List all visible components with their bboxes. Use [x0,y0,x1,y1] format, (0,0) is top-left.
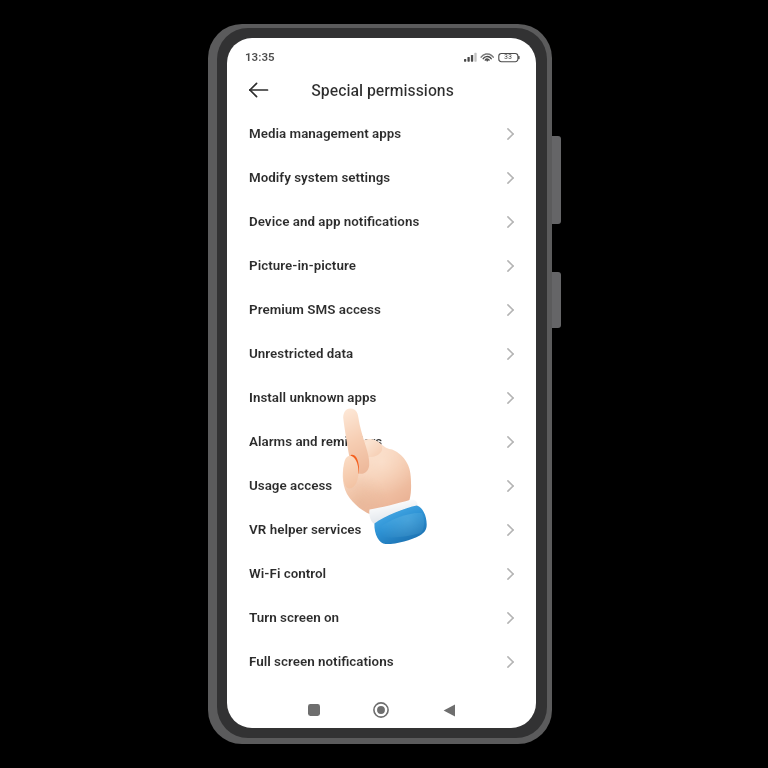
staticText: 13:35 [245,50,275,63]
button[interactable]: Recents [292,688,336,728]
button[interactable]: Modify system settings [227,156,536,200]
staticText: Device and app notifications [249,214,507,230]
button[interactable]: Device and app notifications [227,200,536,244]
staticText: Alarms and reminders [249,434,507,450]
button[interactable]: Back [427,688,471,728]
button[interactable]: Media management apps [227,112,536,156]
staticText: Wi-Fi control [249,566,507,582]
button[interactable]: Unrestricted data [227,332,536,376]
staticText: Turn screen on [249,610,507,626]
staticText: Full screen notifications [249,654,507,670]
staticText: Media management apps [249,126,507,142]
staticText: 33 [504,53,512,61]
staticText: VR helper services [249,522,507,538]
button[interactable]: Install unknown apps [227,376,536,420]
staticText: Usage access [249,478,507,494]
staticText: Picture-in-picture [249,258,507,274]
button[interactable]: Wi-Fi control [227,552,536,596]
button[interactable]: Picture-in-picture [227,244,536,288]
button[interactable]: VR helper services [227,508,536,552]
staticText: Premium SMS access [249,302,507,318]
button[interactable]: Back [238,70,278,110]
staticText: Modify system settings [249,170,507,186]
button[interactable]: Premium SMS access [227,288,536,332]
staticText: Unrestricted data [249,346,507,362]
button[interactable]: Alarms and reminders [227,420,536,464]
button[interactable]: Turn screen on [227,596,536,640]
staticText: Special permissions [311,81,454,100]
button[interactable]: Full screen notifications [227,640,536,684]
button[interactable]: Home [359,688,403,728]
button[interactable]: Usage access [227,464,536,508]
staticText: Install unknown apps [249,390,507,406]
